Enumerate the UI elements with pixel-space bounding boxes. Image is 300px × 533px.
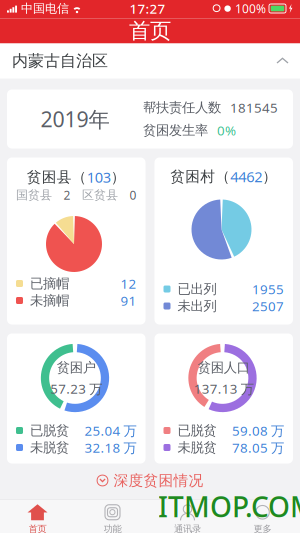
staticText: 已脱贫 [177, 422, 216, 439]
staticText: 首页 [28, 523, 46, 533]
button[interactable]: 深度贫困情况 [96, 471, 203, 489]
staticText: （ [215, 167, 230, 185]
staticText: 深度贫困情况 [113, 471, 203, 489]
staticText: 内蒙古自治区 [12, 51, 108, 71]
staticText: 中国电信 [21, 1, 69, 16]
staticText: 未摘帽 [30, 292, 69, 309]
staticText: ） [111, 168, 126, 186]
staticText: 未脱贫 [30, 439, 69, 456]
staticText: 2507 [252, 297, 284, 315]
staticText: 贫困发生率 [143, 122, 208, 139]
staticText: 贫困县 [27, 168, 72, 186]
staticText: 32.18 万 [84, 439, 136, 456]
staticText: 181545 [230, 99, 278, 116]
staticText: 0% [217, 121, 236, 139]
staticText: 已脱贫 [30, 422, 69, 439]
staticText: 贫困人口 [198, 359, 250, 376]
button[interactable]: 首页 [0, 499, 75, 533]
staticText: 4462 [230, 167, 262, 186]
staticText: 0 [129, 187, 136, 203]
staticText: 12 [120, 275, 136, 292]
button[interactable]: 功能 [75, 499, 150, 533]
staticText: 通讯录 [174, 523, 201, 533]
staticText: ） [262, 167, 277, 185]
staticText: 59.08 万 [232, 422, 284, 439]
staticText: 2019年 [40, 105, 109, 133]
staticText: 1955 [252, 280, 284, 298]
staticText: 78.05 万 [232, 439, 284, 456]
staticText: 17:27 [129, 0, 165, 17]
staticText: 区贫县 [82, 188, 118, 202]
staticText: 137.13 万 [194, 380, 254, 397]
staticText: 未出列 [177, 298, 216, 314]
button[interactable]: 内蒙古自治区 [0, 43, 300, 78]
staticText: 已出列 [177, 281, 216, 297]
staticText: 57.23 万 [50, 380, 102, 397]
staticText: 首页 [129, 18, 171, 44]
staticText: 未脱贫 [177, 439, 216, 456]
staticText: 功能 [103, 523, 121, 533]
staticText: 帮扶责任人数 [143, 99, 221, 116]
staticText: 贫困村 [170, 167, 215, 185]
staticText: 2 [63, 187, 70, 203]
button[interactable]: 更多 [225, 499, 300, 533]
staticText: 国贫县 [16, 188, 52, 202]
staticText: ITMOP.COM [158, 488, 300, 525]
button[interactable]: 通讯录 [150, 499, 225, 533]
staticText: （ [72, 168, 87, 186]
staticText: 103 [87, 167, 111, 187]
staticText: 更多 [253, 523, 271, 533]
staticText: 25.04 万 [84, 422, 136, 439]
staticText: 100% [235, 0, 266, 16]
staticText: 贫困户 [57, 359, 96, 376]
staticText: 91 [120, 292, 136, 309]
staticText: 已摘帽 [30, 275, 69, 292]
